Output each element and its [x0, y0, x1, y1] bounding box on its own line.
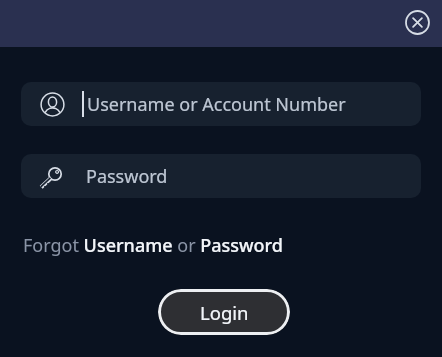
staticText: Password	[86, 164, 168, 189]
button[interactable]	[400, 5, 434, 39]
button[interactable]: Forgot Username or Password	[23, 233, 283, 258]
staticText: Login	[200, 300, 249, 325]
staticText: Username or Account Number	[87, 92, 346, 117]
button[interactable]: Username or Account Number	[21, 82, 421, 126]
button[interactable]: Password	[21, 154, 421, 198]
button[interactable]: Login	[158, 289, 290, 335]
